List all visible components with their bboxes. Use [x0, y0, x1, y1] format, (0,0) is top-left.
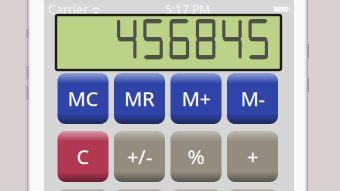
staticText: % — [187, 143, 204, 170]
button[interactable]: M- — [227, 73, 278, 124]
staticText: M- — [240, 85, 264, 112]
button[interactable]: 7 — [57, 189, 108, 191]
button[interactable]: M+ — [170, 73, 221, 124]
button[interactable]: MC — [57, 73, 108, 124]
button[interactable]: x — [227, 189, 278, 191]
button[interactable]: + — [227, 131, 278, 182]
button[interactable]: +/- — [114, 131, 165, 182]
button[interactable]: MR — [114, 73, 165, 124]
staticText: MR — [124, 85, 155, 112]
button[interactable]: C — [57, 131, 108, 182]
button[interactable]: 9 — [170, 189, 221, 191]
staticText: +/- — [127, 143, 152, 170]
staticText: Carrier — [48, 1, 88, 17]
staticText: C — [76, 143, 89, 170]
staticText: 5:17 PM — [165, 1, 210, 17]
staticText: M+ — [181, 85, 210, 112]
staticText: + — [247, 143, 258, 170]
staticText: MC — [67, 85, 98, 112]
button[interactable]: 8 — [114, 189, 165, 191]
button[interactable]: % — [170, 131, 221, 182]
